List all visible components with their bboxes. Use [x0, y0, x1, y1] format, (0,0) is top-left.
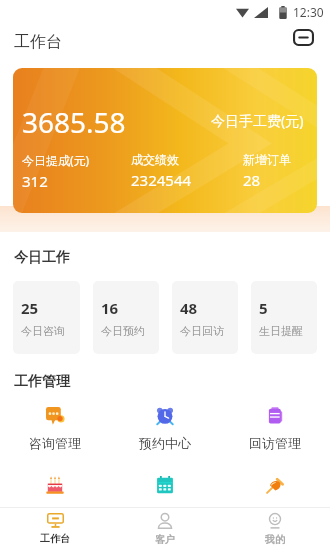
button[interactable]: 工作台	[0, 508, 110, 550]
button[interactable]	[0, 476, 110, 494]
button[interactable]: 48	[172, 281, 238, 354]
button[interactable]: 25	[13, 281, 80, 354]
staticText: 今日咨询	[21, 324, 65, 338]
staticText: 12:30	[293, 4, 324, 20]
staticText: 48	[180, 298, 198, 318]
button[interactable]	[220, 476, 330, 494]
staticText: 今日提成(元)	[22, 152, 90, 168]
staticText: 今日工作	[14, 249, 70, 267]
staticText: 我的	[265, 533, 285, 546]
button[interactable]: 客户	[110, 508, 220, 550]
staticText: 客户	[155, 533, 175, 546]
staticText: 今日回访	[180, 324, 224, 338]
staticText: 2324544	[131, 170, 192, 190]
button[interactable]	[110, 476, 220, 494]
staticText: 312	[22, 171, 48, 191]
button[interactable]: 咨询管理	[0, 407, 110, 451]
button[interactable]: 3685.58	[13, 68, 317, 213]
staticText: 工作台	[14, 32, 62, 52]
button[interactable]: 16	[93, 281, 159, 354]
button[interactable]: 预约中心	[110, 407, 220, 451]
staticText: 3685.58	[22, 103, 126, 141]
staticText: 预约中心	[139, 435, 191, 451]
button[interactable]: 回访管理	[220, 407, 330, 451]
staticText: 工作管理	[14, 373, 70, 391]
button[interactable]: 我的	[220, 508, 330, 550]
staticText: 5	[259, 298, 268, 318]
staticText: 生日提醒	[259, 324, 303, 338]
button[interactable]: Collapse	[289, 23, 317, 51]
staticText: 咨询管理	[29, 435, 81, 451]
staticText: 今日预约	[101, 324, 145, 338]
staticText: 新增订单	[243, 152, 291, 167]
staticText: 工作台	[40, 532, 70, 545]
staticText: 25	[21, 298, 39, 318]
staticText: 16	[101, 298, 119, 318]
button[interactable]: 5	[251, 281, 317, 354]
staticText: 成交绩效	[131, 152, 179, 167]
staticText: 28	[243, 170, 261, 190]
staticText: 今日手工费(元)	[211, 111, 304, 130]
staticText: 回访管理	[249, 435, 301, 451]
